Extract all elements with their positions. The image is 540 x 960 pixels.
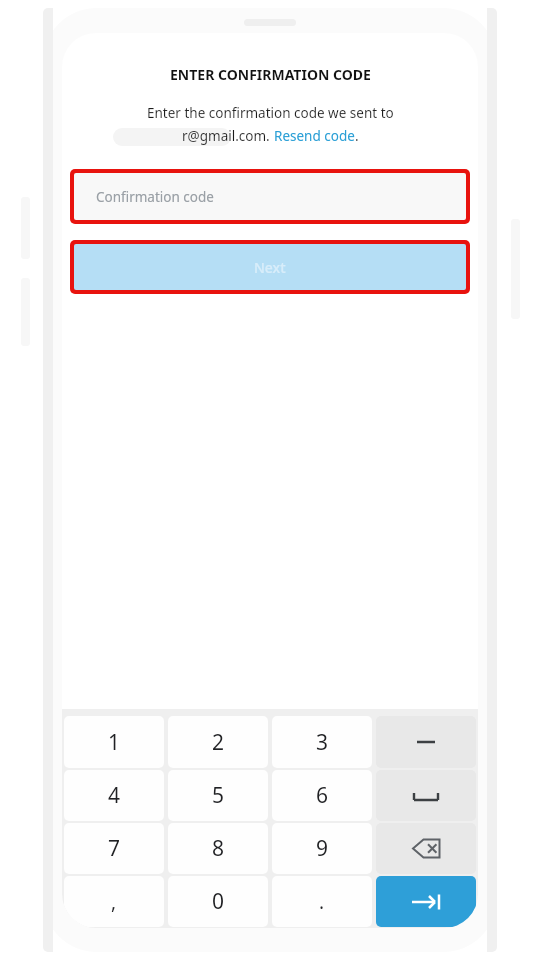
staticText: Resend code: [274, 127, 355, 145]
staticText: 7: [108, 834, 121, 863]
staticText: 2: [212, 728, 225, 757]
staticText: 4: [108, 781, 121, 810]
staticText: 1: [108, 728, 121, 757]
button[interactable]: 6: [272, 770, 372, 821]
button[interactable]: Resend code: [274, 127, 355, 145]
button[interactable]: .: [272, 876, 372, 927]
staticText: 3: [316, 728, 329, 757]
staticText: 6: [316, 781, 329, 810]
button[interactable]: Space: [376, 770, 476, 821]
button[interactable]: 8: [168, 823, 268, 874]
staticText: 8: [212, 834, 225, 863]
button[interactable]: ,: [64, 876, 164, 927]
staticText: Enter the confirmation code we sent to: [147, 104, 394, 122]
button[interactable]: 3: [272, 716, 372, 768]
staticText: Confirmation code: [96, 188, 214, 206]
button[interactable]: Backspace: [376, 823, 476, 874]
button[interactable]: Next: [376, 876, 476, 927]
staticText: ,: [111, 889, 117, 915]
button[interactable]: 2: [168, 716, 268, 768]
button[interactable]: 0: [168, 876, 268, 927]
staticText: 5: [212, 781, 225, 810]
button[interactable]: 9: [272, 823, 372, 874]
staticText: .: [319, 889, 325, 915]
button[interactable]: 7: [64, 823, 164, 874]
button[interactable]: 4: [64, 770, 164, 821]
button[interactable]: Minus: [376, 716, 476, 768]
staticText: ENTER CONFIRMATION CODE: [170, 65, 371, 84]
staticText: .: [355, 127, 359, 145]
button[interactable]: Confirmation code: [74, 173, 466, 220]
staticText: r@gmail.com.: [182, 127, 274, 145]
staticText: 9: [316, 834, 329, 863]
button[interactable]: 5: [168, 770, 268, 821]
staticText: Next: [254, 258, 286, 277]
button[interactable]: 1: [64, 716, 164, 768]
staticText: 0: [212, 887, 225, 916]
